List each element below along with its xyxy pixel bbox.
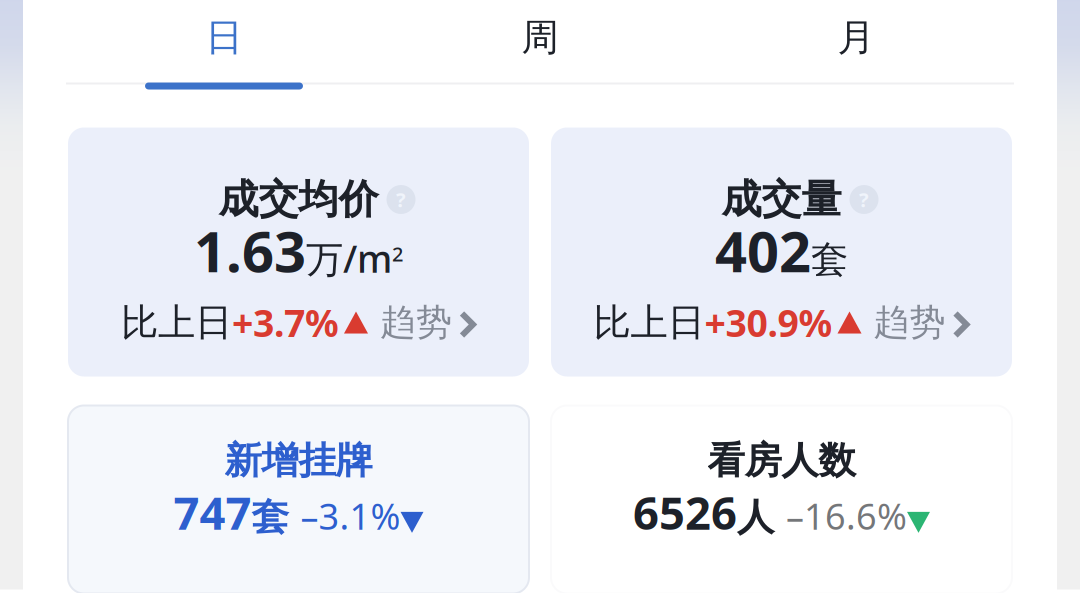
- staticText: 人: [737, 494, 774, 540]
- staticText: 成交量: [721, 175, 841, 224]
- staticText: 402: [715, 213, 811, 288]
- button[interactable]: 成交量: [551, 127, 1012, 376]
- staticText: 月: [837, 15, 874, 60]
- staticText: 万/m2: [306, 233, 403, 283]
- staticText: 成交均价: [218, 175, 378, 224]
- staticText: +30.9%: [704, 298, 832, 347]
- staticText: 1.63: [194, 213, 306, 288]
- staticText: 比上日: [121, 300, 232, 345]
- staticText: 看房人数: [707, 438, 855, 483]
- button[interactable]: 日: [66, 0, 382, 89]
- button[interactable]: 看房人数: [551, 405, 1012, 593]
- staticText: –3.1%: [300, 492, 400, 540]
- staticText: 趋势: [380, 300, 452, 345]
- staticText: 747: [173, 482, 251, 542]
- staticText: 比上日: [593, 300, 704, 345]
- staticText: 套: [811, 237, 848, 283]
- staticText: ?: [859, 186, 869, 213]
- staticText: 日: [205, 15, 242, 60]
- button[interactable]: 新增挂牌: [68, 405, 529, 593]
- staticText: –16.6%: [786, 492, 907, 540]
- staticText: 周: [521, 15, 558, 60]
- button[interactable]: 周: [382, 0, 698, 89]
- staticText: 6526: [633, 482, 737, 542]
- staticText: 新增挂牌: [224, 438, 372, 483]
- button[interactable]: 月: [698, 0, 1014, 89]
- staticText: 套: [251, 494, 288, 540]
- button[interactable]: 成交均价: [68, 127, 529, 376]
- staticText: +3.7%: [232, 298, 339, 347]
- staticText: ?: [396, 186, 406, 213]
- staticText: 趋势: [873, 300, 945, 345]
